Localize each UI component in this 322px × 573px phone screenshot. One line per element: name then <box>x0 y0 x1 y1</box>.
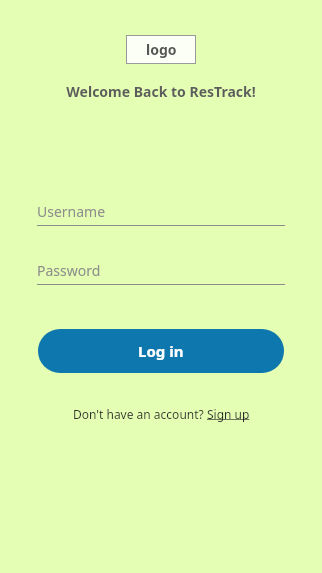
staticText: logo <box>146 40 177 59</box>
staticText: Don't have an account? <box>73 406 207 422</box>
button[interactable]: Sign up <box>207 406 250 422</box>
staticText: Username <box>37 202 106 221</box>
staticText: Password <box>37 261 101 280</box>
staticText: Log in <box>138 341 184 361</box>
button[interactable]: Log in <box>38 329 284 373</box>
staticText: Welcome Back to ResTrack! <box>0 82 322 101</box>
button[interactable]: logo <box>126 35 196 64</box>
button[interactable]: Password input field <box>37 257 285 285</box>
staticText: Sign up <box>207 406 250 422</box>
button[interactable]: Username input field <box>37 198 285 226</box>
